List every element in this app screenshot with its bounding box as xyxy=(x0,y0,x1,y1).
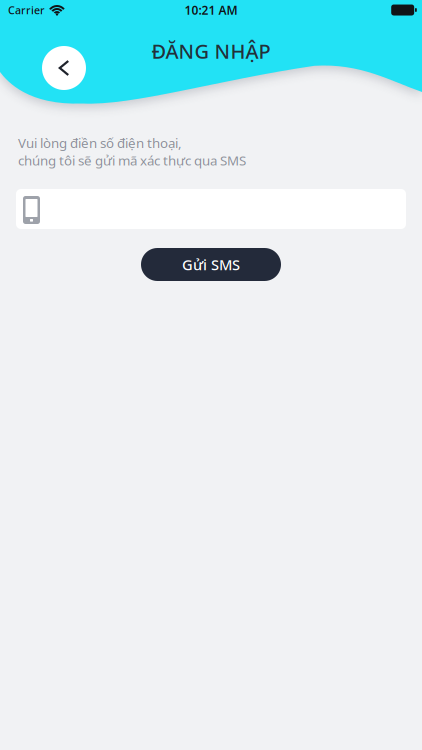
staticText: ĐĂNG NHẬP xyxy=(151,38,270,64)
staticText: Vui lòng điền số điện thoại, xyxy=(18,134,182,152)
staticText: chúng tôi sẽ gửi mã xác thực qua SMS xyxy=(18,151,246,169)
button[interactable]: Back xyxy=(42,46,86,90)
button[interactable]: Gửi SMS xyxy=(141,248,281,281)
staticText: Carrier xyxy=(8,3,45,17)
staticText: Gửi SMS xyxy=(182,255,240,274)
staticText: 10:21 AM xyxy=(184,2,237,18)
